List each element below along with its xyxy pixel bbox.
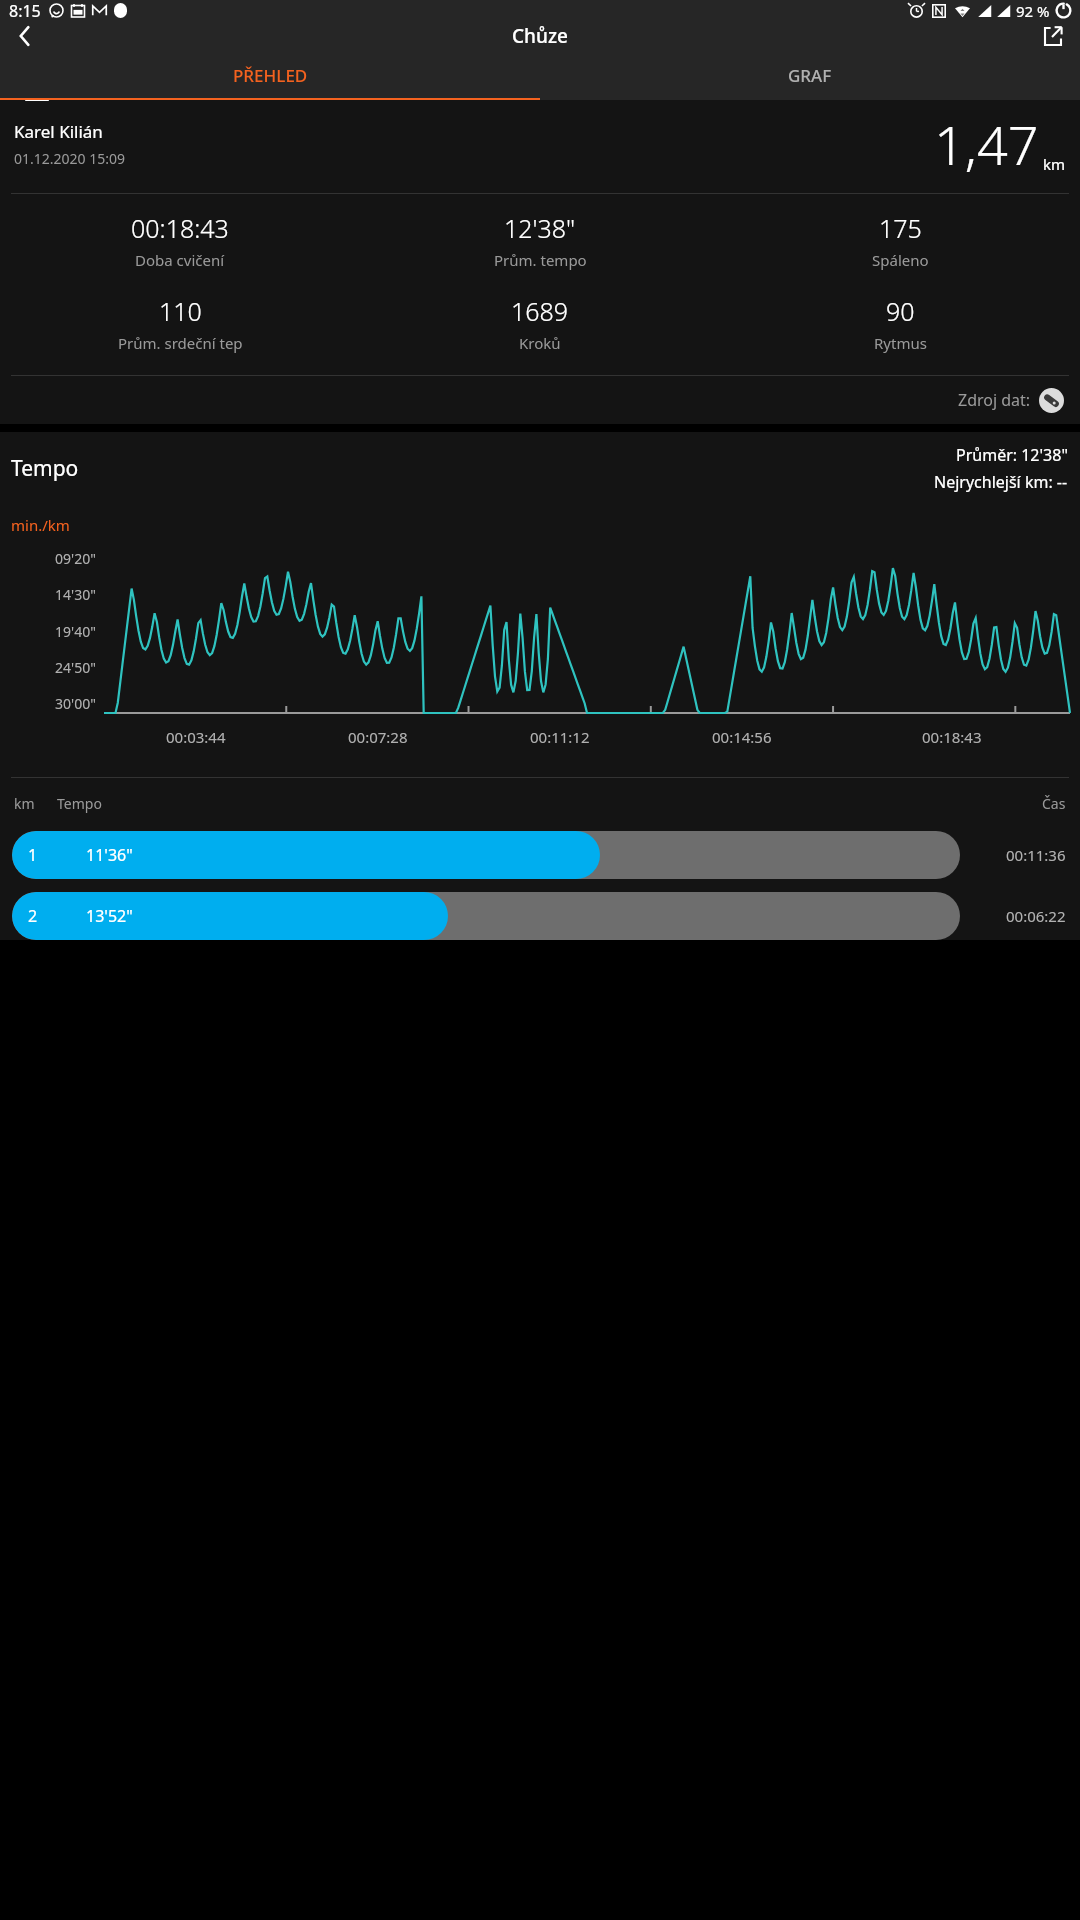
staticText: Karel Kilián [14,120,103,143]
staticText: 14'30" [55,585,96,604]
staticText: 00:14:56 [712,727,772,747]
button[interactable]: 2 [12,892,1066,940]
button[interactable]: 1 [12,831,1066,879]
button[interactable]: GRAF [540,51,1080,100]
staticText: 1,47 [934,107,1039,181]
staticText: Kroků [519,333,561,353]
staticText: 00:03:44 [166,727,226,747]
staticText: 00:18:43 [922,727,982,747]
staticText: Tempo [57,794,102,813]
staticText: 12'38" [504,211,576,245]
staticText: 00:11:36 [1006,845,1066,865]
staticText: 24'50" [55,658,96,677]
staticText: min./km [11,515,70,535]
staticText: Nejrychlejší km: -- [934,471,1068,493]
staticText: 175 [879,211,922,245]
staticText: 09'20" [55,549,96,568]
staticText: 2 [28,905,38,927]
staticText: 00:06:22 [1006,906,1066,926]
staticText: Zdroj dat: [958,389,1031,411]
button[interactable]: Back [0,21,50,51]
staticText: PŘEHLED [233,64,308,87]
staticText: 13'52" [86,905,133,927]
staticText: Čas [1042,794,1066,813]
staticText: Chůze [512,23,568,49]
staticText: 19'40" [55,622,96,641]
staticText: 1 [28,844,38,866]
button[interactable]: Share [1026,21,1080,51]
staticText: Spáleno [872,250,929,270]
staticText: 00:07:28 [348,727,408,747]
staticText: 90 [886,294,915,328]
staticText: 92 % [1016,1,1050,21]
staticText: Rytmus [874,333,927,353]
staticText: km [1043,154,1066,174]
staticText: 110 [159,294,202,328]
staticText: Prům. tempo [494,250,587,270]
staticText: Doba cvičení [135,250,225,270]
staticText: 8:15 [9,0,41,21]
staticText: 00:11:12 [530,727,590,747]
staticText: 01.12.2020 15:09 [14,149,125,168]
staticText: 00:18:43 [131,211,229,245]
staticText: km [14,794,35,813]
staticText: Průměr: 12'38" [956,444,1068,466]
staticText: GRAF [788,64,832,87]
staticText: 1689 [511,294,569,328]
staticText: Tempo [11,454,79,483]
staticText: 30'00" [55,694,96,713]
button[interactable]: Zdroj dat: [0,376,1064,424]
button[interactable]: PŘEHLED [0,51,540,100]
staticText: 11'36" [86,844,133,866]
staticText: Prům. srdeční tep [118,333,243,353]
